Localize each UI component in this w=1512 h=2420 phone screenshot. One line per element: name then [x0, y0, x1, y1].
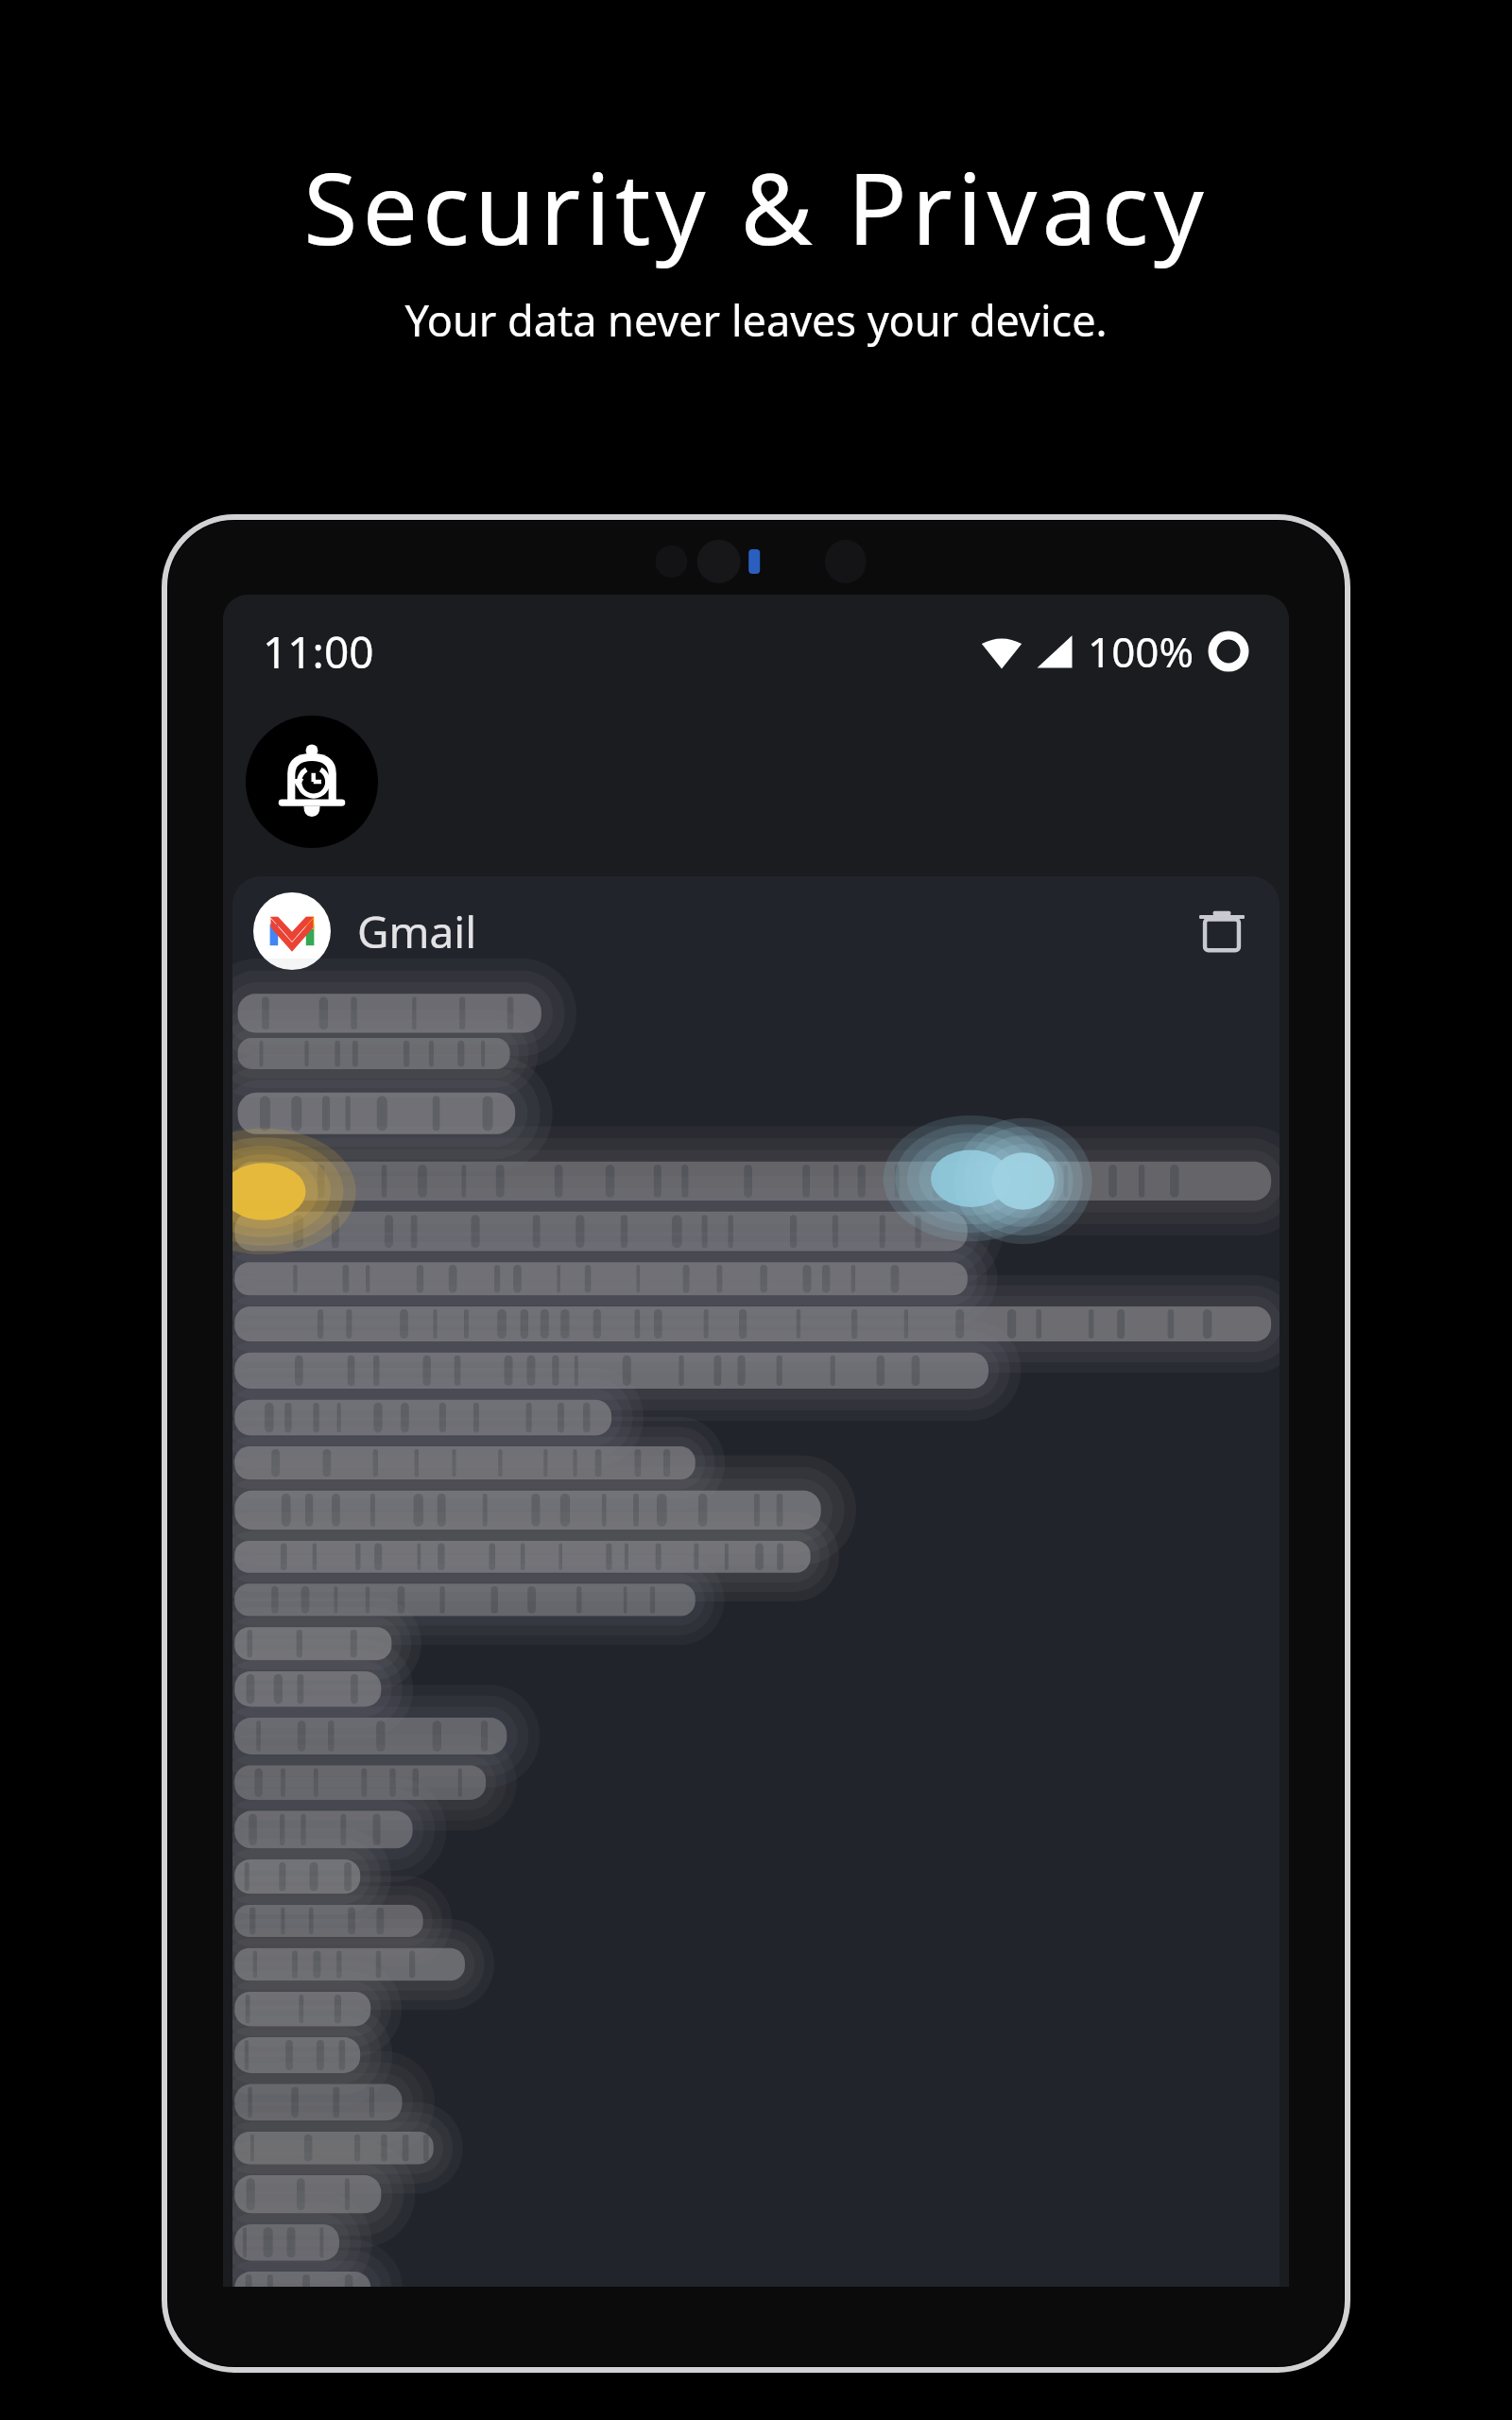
staticText: 11:00	[263, 622, 374, 682]
staticText: 100%	[1088, 623, 1194, 680]
staticText: Gmail	[357, 902, 477, 961]
button[interactable]: Gmail	[232, 876, 1280, 986]
staticText: Security & Privacy	[303, 140, 1209, 274]
button[interactable]: Delete	[1189, 898, 1255, 964]
button[interactable]: Notification history	[246, 716, 378, 848]
staticText: Your data never leaves your device.	[404, 291, 1108, 349]
